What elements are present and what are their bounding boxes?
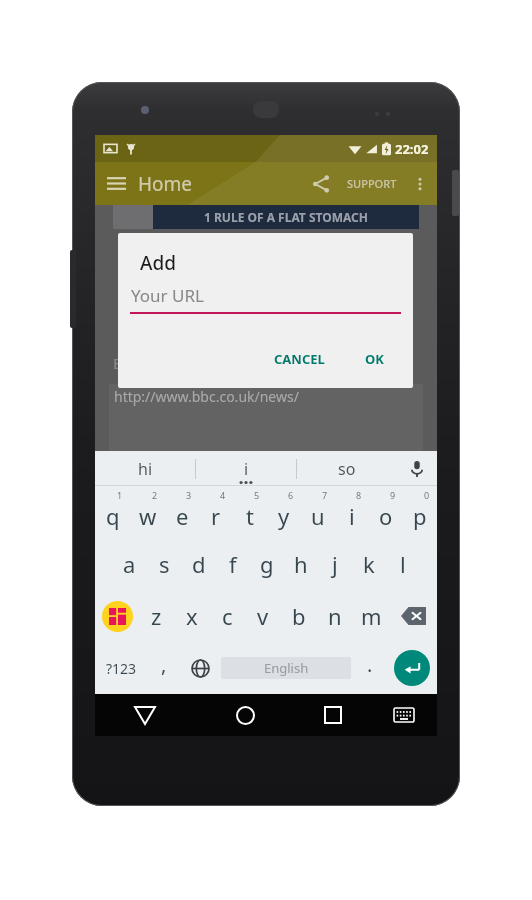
staticText: 9 — [390, 489, 396, 501]
staticText: CANCEL — [274, 350, 325, 368]
staticText: b — [292, 601, 306, 631]
staticText: w — [139, 501, 157, 531]
staticText: a — [123, 549, 136, 579]
staticText: u — [311, 501, 325, 531]
staticText: Add — [140, 250, 177, 276]
button[interactable]: . — [353, 642, 387, 694]
button[interactable]: x — [174, 590, 209, 642]
staticText: m — [361, 601, 382, 631]
staticText: h — [294, 549, 308, 579]
button[interactable]: 5 — [233, 486, 267, 538]
staticText: 6 — [288, 489, 294, 501]
button[interactable]: a — [112, 538, 147, 590]
button[interactable]: 2 — [130, 486, 165, 538]
button[interactable]: g — [250, 538, 284, 590]
staticText: SUPPORT — [347, 176, 397, 191]
staticText: q — [106, 501, 120, 531]
button[interactable]: Back — [95, 694, 195, 736]
button[interactable]: Voice input — [397, 451, 437, 486]
button[interactable]: SUPPORT — [341, 176, 403, 191]
staticText: 8 — [356, 489, 362, 501]
staticText: c — [222, 601, 233, 631]
staticText: . — [367, 651, 373, 678]
staticText: d — [192, 549, 206, 579]
staticText: p — [413, 501, 427, 531]
button[interactable]: Hide keyboard — [371, 694, 437, 736]
button[interactable]: l — [386, 538, 420, 590]
button[interactable]: , — [147, 642, 181, 694]
button[interactable]: Home — [195, 694, 295, 736]
staticText: hi — [138, 458, 153, 480]
staticText: E — [113, 353, 122, 373]
staticText: k — [363, 549, 375, 579]
button[interactable]: z — [139, 590, 174, 642]
staticText: 1 — [117, 489, 123, 501]
button[interactable]: English — [221, 657, 351, 679]
staticText: 4 — [220, 489, 226, 501]
button[interactable]: m — [353, 590, 389, 642]
button[interactable]: Open navigation menu — [95, 162, 138, 205]
button[interactable]: h — [284, 538, 318, 590]
button[interactable]: b — [281, 590, 317, 642]
staticText: o — [379, 501, 393, 531]
button[interactable]: Share — [301, 164, 341, 204]
staticText: 5 — [254, 489, 260, 501]
button[interactable]: Enter — [387, 642, 437, 694]
staticText: v — [257, 601, 269, 631]
button[interactable]: 9 — [369, 486, 403, 538]
staticText: 7 — [322, 489, 328, 501]
staticText: l — [400, 549, 406, 579]
staticText: x — [186, 601, 198, 631]
staticText: ?123 — [106, 659, 137, 678]
button[interactable]: More options — [403, 167, 437, 201]
staticText: , — [161, 651, 167, 678]
staticText: Home — [138, 171, 193, 197]
button[interactable]: 7 — [301, 486, 335, 538]
staticText: t — [246, 501, 254, 531]
staticText: g — [260, 549, 274, 579]
staticText: http://www.bbc.co.uk/news/ — [114, 387, 299, 406]
button[interactable]: d — [182, 538, 216, 590]
button[interactable]: 1 — [95, 486, 130, 538]
button[interactable]: ?123 — [95, 642, 147, 694]
button[interactable]: hi — [95, 451, 195, 486]
staticText: so — [338, 458, 356, 480]
staticText: 0 — [424, 489, 430, 501]
button[interactable]: j — [318, 538, 352, 590]
staticText: s — [159, 549, 170, 579]
staticText: English — [264, 659, 309, 677]
staticText: e — [176, 501, 189, 531]
button[interactable]: n — [317, 590, 353, 642]
staticText: z — [151, 601, 162, 631]
button[interactable]: s — [147, 538, 182, 590]
staticText: 22:02 — [395, 140, 429, 158]
button[interactable]: so — [297, 451, 397, 486]
button[interactable]: Change language — [181, 642, 219, 694]
staticText: 2 — [152, 489, 158, 501]
button[interactable]: k — [352, 538, 386, 590]
button[interactable]: c — [209, 590, 245, 642]
button[interactable]: 0 — [403, 486, 437, 538]
staticText: j — [332, 549, 338, 579]
button[interactable]: 3 — [165, 486, 199, 538]
button[interactable]: Recent apps — [295, 694, 371, 736]
button[interactable]: f — [216, 538, 250, 590]
staticText: f — [229, 549, 237, 579]
staticText: i — [244, 458, 249, 480]
button[interactable]: OK — [356, 344, 393, 374]
staticText: i — [349, 501, 355, 531]
button[interactable]: 8 — [335, 486, 369, 538]
button[interactable]: 6 — [267, 486, 301, 538]
staticText: 3 — [186, 489, 192, 501]
button[interactable]: CANCEL — [265, 344, 334, 374]
staticText: OK — [365, 350, 384, 368]
button[interactable]: Shift — [95, 590, 139, 642]
staticText: y — [278, 501, 290, 531]
button[interactable]: v — [245, 590, 281, 642]
button[interactable]: Backspace — [389, 590, 437, 642]
staticText: n — [328, 601, 342, 631]
button[interactable]: i — [196, 451, 296, 486]
button[interactable]: 4 — [199, 486, 233, 538]
staticText: r — [211, 501, 221, 531]
staticText: Your URL — [131, 284, 204, 307]
